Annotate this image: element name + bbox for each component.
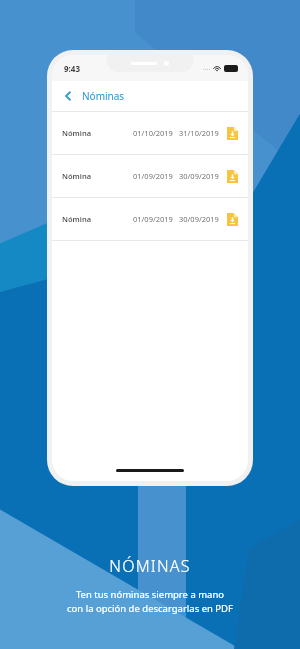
staticText: Nóminas [82, 89, 125, 103]
staticText: 9:43 [64, 63, 80, 74]
staticText: 30/09/2019 [179, 171, 219, 181]
staticText: 01/09/2019 [133, 214, 173, 224]
staticText: Ten tus nóminas siempre a mano con la op… [67, 588, 233, 615]
staticText: 01/09/2019 [133, 171, 173, 181]
button[interactable]: Descargar PDF [227, 127, 238, 140]
staticText: Nómina [62, 128, 92, 138]
staticText: NÓMINAS [109, 555, 191, 577]
button[interactable]: Descargar PDF [227, 170, 238, 183]
staticText: Nómina [62, 171, 92, 181]
staticText: Nómina [62, 214, 92, 224]
staticText: 30/09/2019 [179, 214, 219, 224]
button[interactable]: Nómina [52, 112, 248, 154]
staticText: 31/10/2019 [179, 128, 219, 138]
button[interactable]: Nómina [52, 198, 248, 240]
button[interactable]: Back [61, 89, 125, 103]
button[interactable]: Nómina [52, 155, 248, 197]
button[interactable]: Descargar PDF [227, 213, 238, 226]
other: Back [61, 89, 75, 103]
staticText: 01/10/2019 [133, 128, 173, 138]
